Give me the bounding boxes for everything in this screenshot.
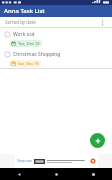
staticText: Shop now bbox=[17, 159, 32, 163]
staticText: Sorted by date bbox=[5, 19, 36, 25]
button[interactable]: Back bbox=[0, 168, 38, 180]
button[interactable]: Mark Work out complete bbox=[0, 28, 112, 48]
staticText: Anna Task List bbox=[4, 7, 45, 15]
button[interactable]: More options bbox=[98, 18, 107, 27]
button[interactable]: Sat, Dec 16 bbox=[9, 60, 41, 67]
staticText: Work out bbox=[13, 31, 35, 38]
button[interactable]: Add task bbox=[90, 133, 105, 148]
staticText: Tue, Dec 12 bbox=[18, 41, 40, 46]
button[interactable]: Mark Christmas Shopping complete bbox=[4, 51, 11, 58]
button[interactable]: Recent apps bbox=[75, 168, 112, 180]
button[interactable]: Sorted by date bbox=[0, 17, 112, 27]
button[interactable]: Shop now bbox=[15, 154, 98, 168]
staticText: Christmas Shopping bbox=[13, 51, 61, 58]
staticText: Sat, Dec 16 bbox=[18, 61, 39, 66]
button[interactable]: Home bbox=[38, 168, 75, 180]
button[interactable]: Mark Work out complete bbox=[4, 31, 11, 38]
button[interactable]: Tue, Dec 12 bbox=[9, 40, 42, 47]
button[interactable]: Mark Christmas Shopping complete bbox=[0, 48, 112, 68]
